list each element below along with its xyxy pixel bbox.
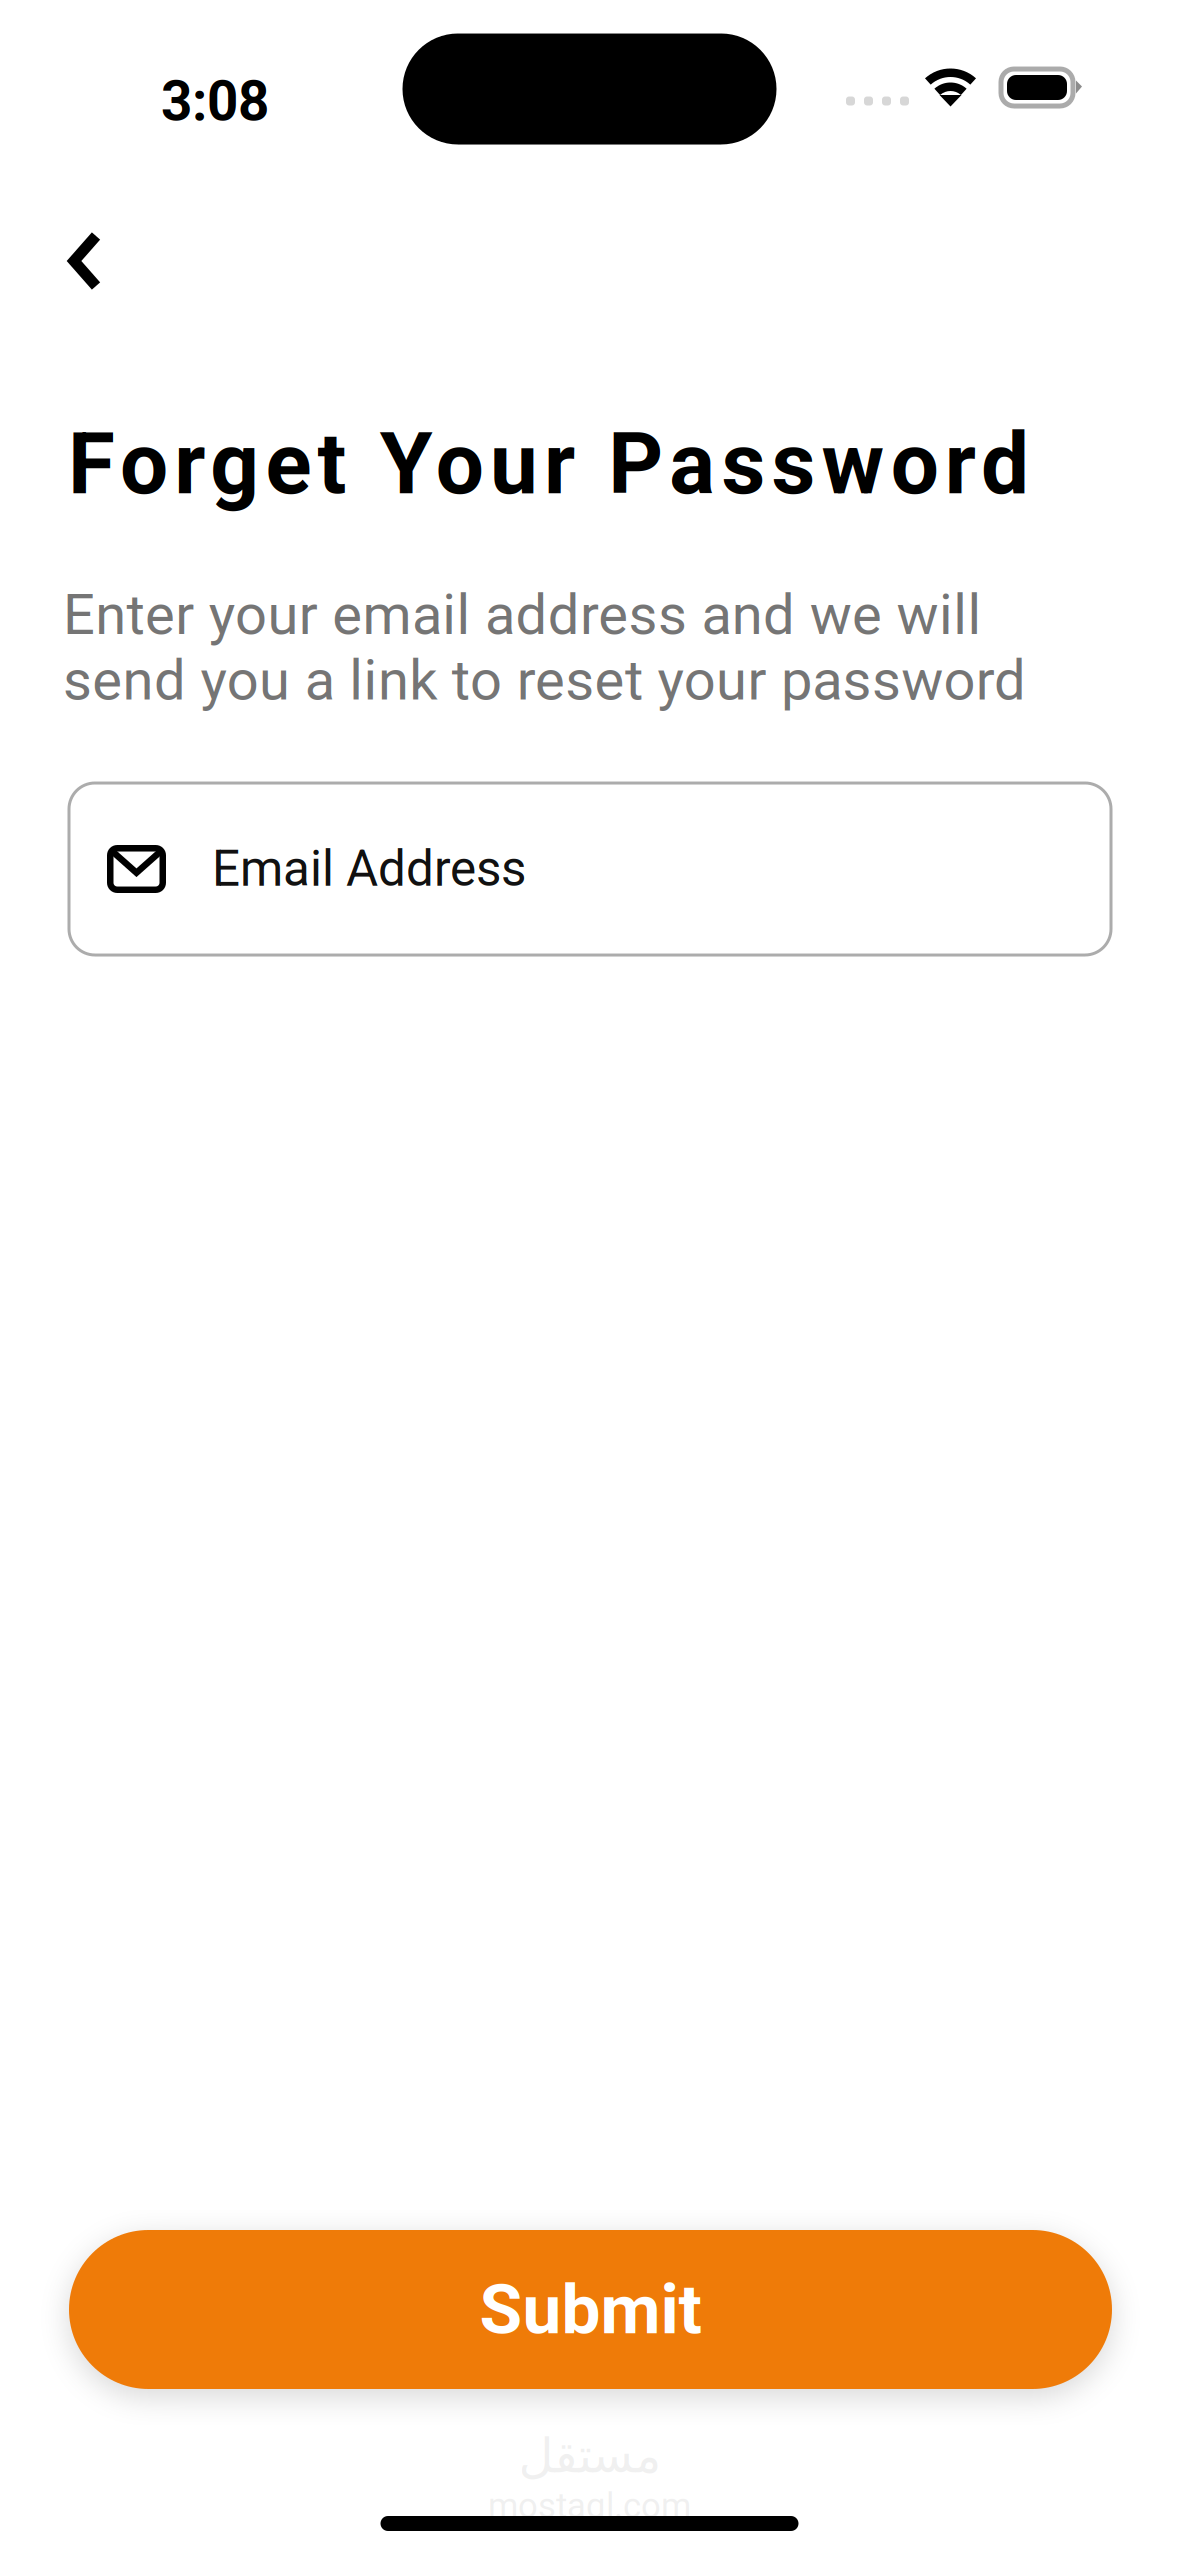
staticText: Submit	[479, 2269, 701, 2350]
button[interactable]: Back	[0, 196, 148, 326]
staticText: Enter your email address and we will sen…	[63, 582, 1026, 713]
staticText: مستقل	[518, 2428, 661, 2484]
staticText: Email Address	[212, 840, 526, 898]
staticText: Forget Your Password	[68, 414, 1029, 514]
staticText: mostaql.com	[488, 2486, 691, 2526]
button[interactable]: Submit	[69, 2230, 1112, 2389]
staticText: 3:08	[161, 69, 269, 134]
